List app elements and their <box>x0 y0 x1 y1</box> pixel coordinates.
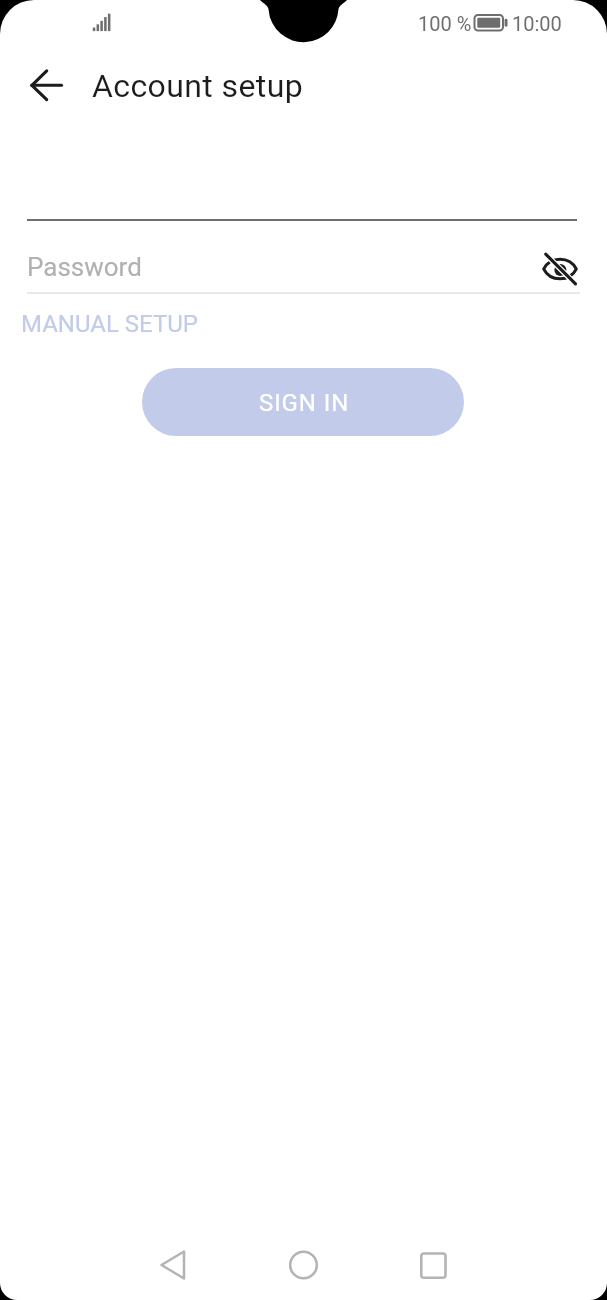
staticText: Password <box>27 252 142 282</box>
button[interactable]: Home <box>275 1237 331 1293</box>
staticText: 10:00 <box>512 12 562 35</box>
button[interactable]: Recent apps <box>404 1237 460 1293</box>
button[interactable]: MANUAL SETUP <box>13 302 190 330</box>
button[interactable]: Back <box>22 62 70 110</box>
staticText: Account setup <box>92 67 304 105</box>
staticText: SIGN IN <box>259 389 350 417</box>
button[interactable]: Show password <box>538 247 582 291</box>
staticText: MANUAL SETUP <box>21 310 198 338</box>
button[interactable]: Back <box>145 1237 201 1293</box>
staticText: 100 % <box>418 12 472 35</box>
button[interactable]: SIGN IN <box>142 368 464 436</box>
